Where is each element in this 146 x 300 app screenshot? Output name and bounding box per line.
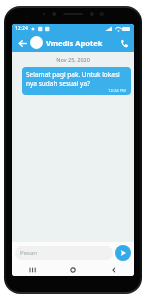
button[interactable]: Back [93,263,134,276]
button[interactable]: Selamat pagi pak. Untuk lokasi nya sudah… [22,67,131,95]
button[interactable]: Send [115,245,131,261]
staticText: Vmedis Apotek Dan Klinik [46,38,117,48]
staticText: 12:24 PM [108,88,127,94]
button[interactable]: Home [52,263,93,276]
staticText: Selamat pagi pak. Untuk lokasi nya sudah… [26,70,127,88]
button[interactable]: Pesan [15,246,113,260]
button[interactable]: Recent apps [12,263,52,276]
button[interactable]: Contact photo [30,36,43,49]
button[interactable]: Call [117,36,131,50]
staticText: Pesan [20,249,37,257]
staticText: 12:24 [15,25,28,32]
button[interactable]: Back [15,36,29,50]
staticText: Nov 25, 2020 [56,56,90,63]
